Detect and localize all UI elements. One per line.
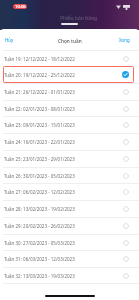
button[interactable]: Tuần 23: 09/01/2023 - 15/01/2023 (0, 116, 139, 133)
staticText: Tuần 23: 09/01/2023 - 15/01/2023 (4, 122, 75, 128)
staticText: Hủy (5, 37, 14, 43)
staticText: Tuần 19: 12/12/2022 - 18/12/2022 (4, 56, 75, 62)
staticText: Tuần 29: 20/02/2023 - 26/02/2023 (4, 223, 75, 229)
staticText: Chọn tuần (58, 38, 82, 44)
button[interactable]: Xong (113, 32, 139, 48)
button[interactable]: Tuần 19: 12/12/2022 - 18/12/2022 (0, 50, 139, 67)
staticText: Tuần 27: 06/02/2023 - 12/02/2023 (4, 189, 75, 195)
staticText: Tuần 24: 16/01/2023 - 22/01/2023 (4, 139, 75, 145)
other: Wifi (116, 5, 121, 9)
button[interactable]: Tuần 28: 13/02/2023 - 19/02/2023 (0, 200, 139, 217)
button[interactable]: Tuần 22: 02/01/2023 - 08/01/2023 (0, 100, 139, 117)
staticText: Tuần 21: 26/12/2022 - 01/01/2023 (4, 89, 75, 95)
button[interactable]: Tuần 20: 19/12/2022 - 25/12/2022 (0, 66, 139, 83)
staticText: Tuần 31: 06/03/2023 - 12/03/2023 (4, 256, 75, 262)
button[interactable]: Tuần 26: 30/01/2023 - 05/02/2023 (0, 167, 139, 184)
staticText: Tuần 22: 02/01/2023 - 08/01/2023 (4, 106, 75, 112)
staticText: Xong (119, 37, 130, 43)
button[interactable]: Tuần 27: 06/02/2023 - 12/02/2023 (0, 183, 139, 200)
button[interactable]: Tuần 29: 20/02/2023 - 26/02/2023 (0, 217, 139, 234)
button[interactable]: Tuần 21: 26/12/2022 - 01/01/2023 (0, 83, 139, 100)
staticText: 10:06 (15, 4, 26, 9)
button[interactable]: Tuần 31: 06/03/2023 - 12/03/2023 (0, 250, 139, 267)
button[interactable]: Tuần 24: 16/01/2023 - 22/01/2023 (0, 133, 139, 150)
button[interactable]: Tuần 30: 27/02/2023 - 05/03/2023 (0, 234, 139, 251)
staticText: Tuần 28: 13/02/2023 - 19/02/2023 (4, 206, 75, 212)
staticText: Tuần 20: 19/12/2022 - 25/12/2022 (4, 72, 75, 78)
staticText: Tuần 32: 13/03/2023 - 19/03/2023 (4, 273, 75, 279)
button[interactable]: Tuần 32: 13/03/2023 - 19/03/2023 (0, 267, 139, 284)
other: Battery (123, 5, 130, 10)
staticText: Tuần 26: 30/01/2023 - 05/02/2023 (4, 173, 75, 179)
staticText: Tuần 25: 23/01/2023 - 29/01/2023 (4, 156, 75, 162)
staticText: Phiếu bán hàng (60, 15, 98, 22)
button[interactable]: Hủy (0, 32, 20, 48)
button[interactable]: Tuần 25: 23/01/2023 - 29/01/2023 (0, 150, 139, 167)
staticText: Tuần 30: 27/02/2023 - 05/03/2023 (4, 240, 75, 246)
